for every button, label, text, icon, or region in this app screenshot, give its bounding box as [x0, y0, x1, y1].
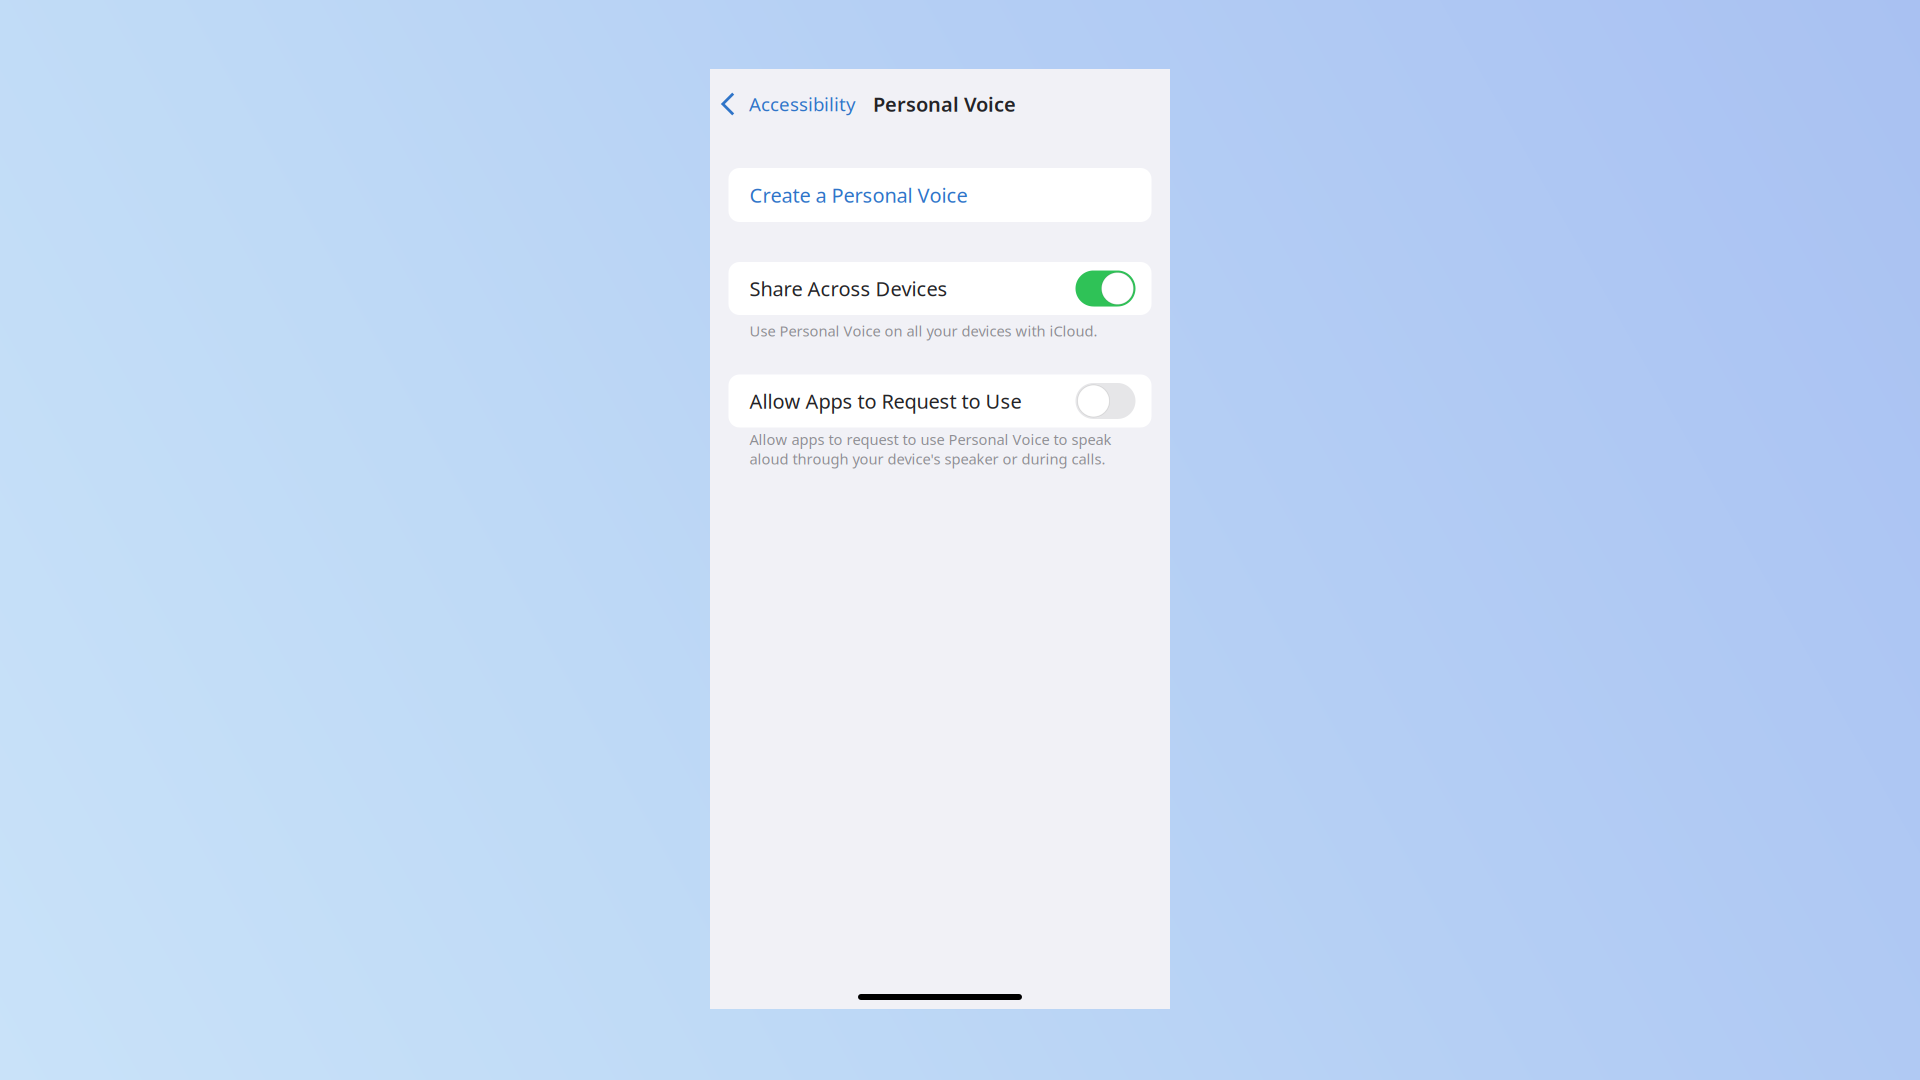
button[interactable]: Allow Apps to Request to Use	[728, 374, 1151, 427]
staticText: aloud through your device's speaker or d…	[749, 449, 1105, 468]
staticText: Allow Apps to Request to Use	[749, 388, 1021, 414]
button[interactable]: Share Across Devices	[728, 262, 1151, 315]
staticText: Allow apps to request to use Personal Vo…	[749, 429, 1111, 449]
staticText: Share Across Devices	[749, 275, 947, 302]
button[interactable]: Create a Personal Voice	[728, 168, 1151, 222]
staticText: Use Personal Voice on all your devices w…	[749, 321, 1097, 340]
staticText: Create a Personal Voice	[749, 182, 967, 208]
staticText: Accessibility	[749, 92, 856, 116]
button[interactable]: Back to Accessibility	[721, 92, 856, 116]
staticText: Personal Voice	[873, 91, 1016, 117]
